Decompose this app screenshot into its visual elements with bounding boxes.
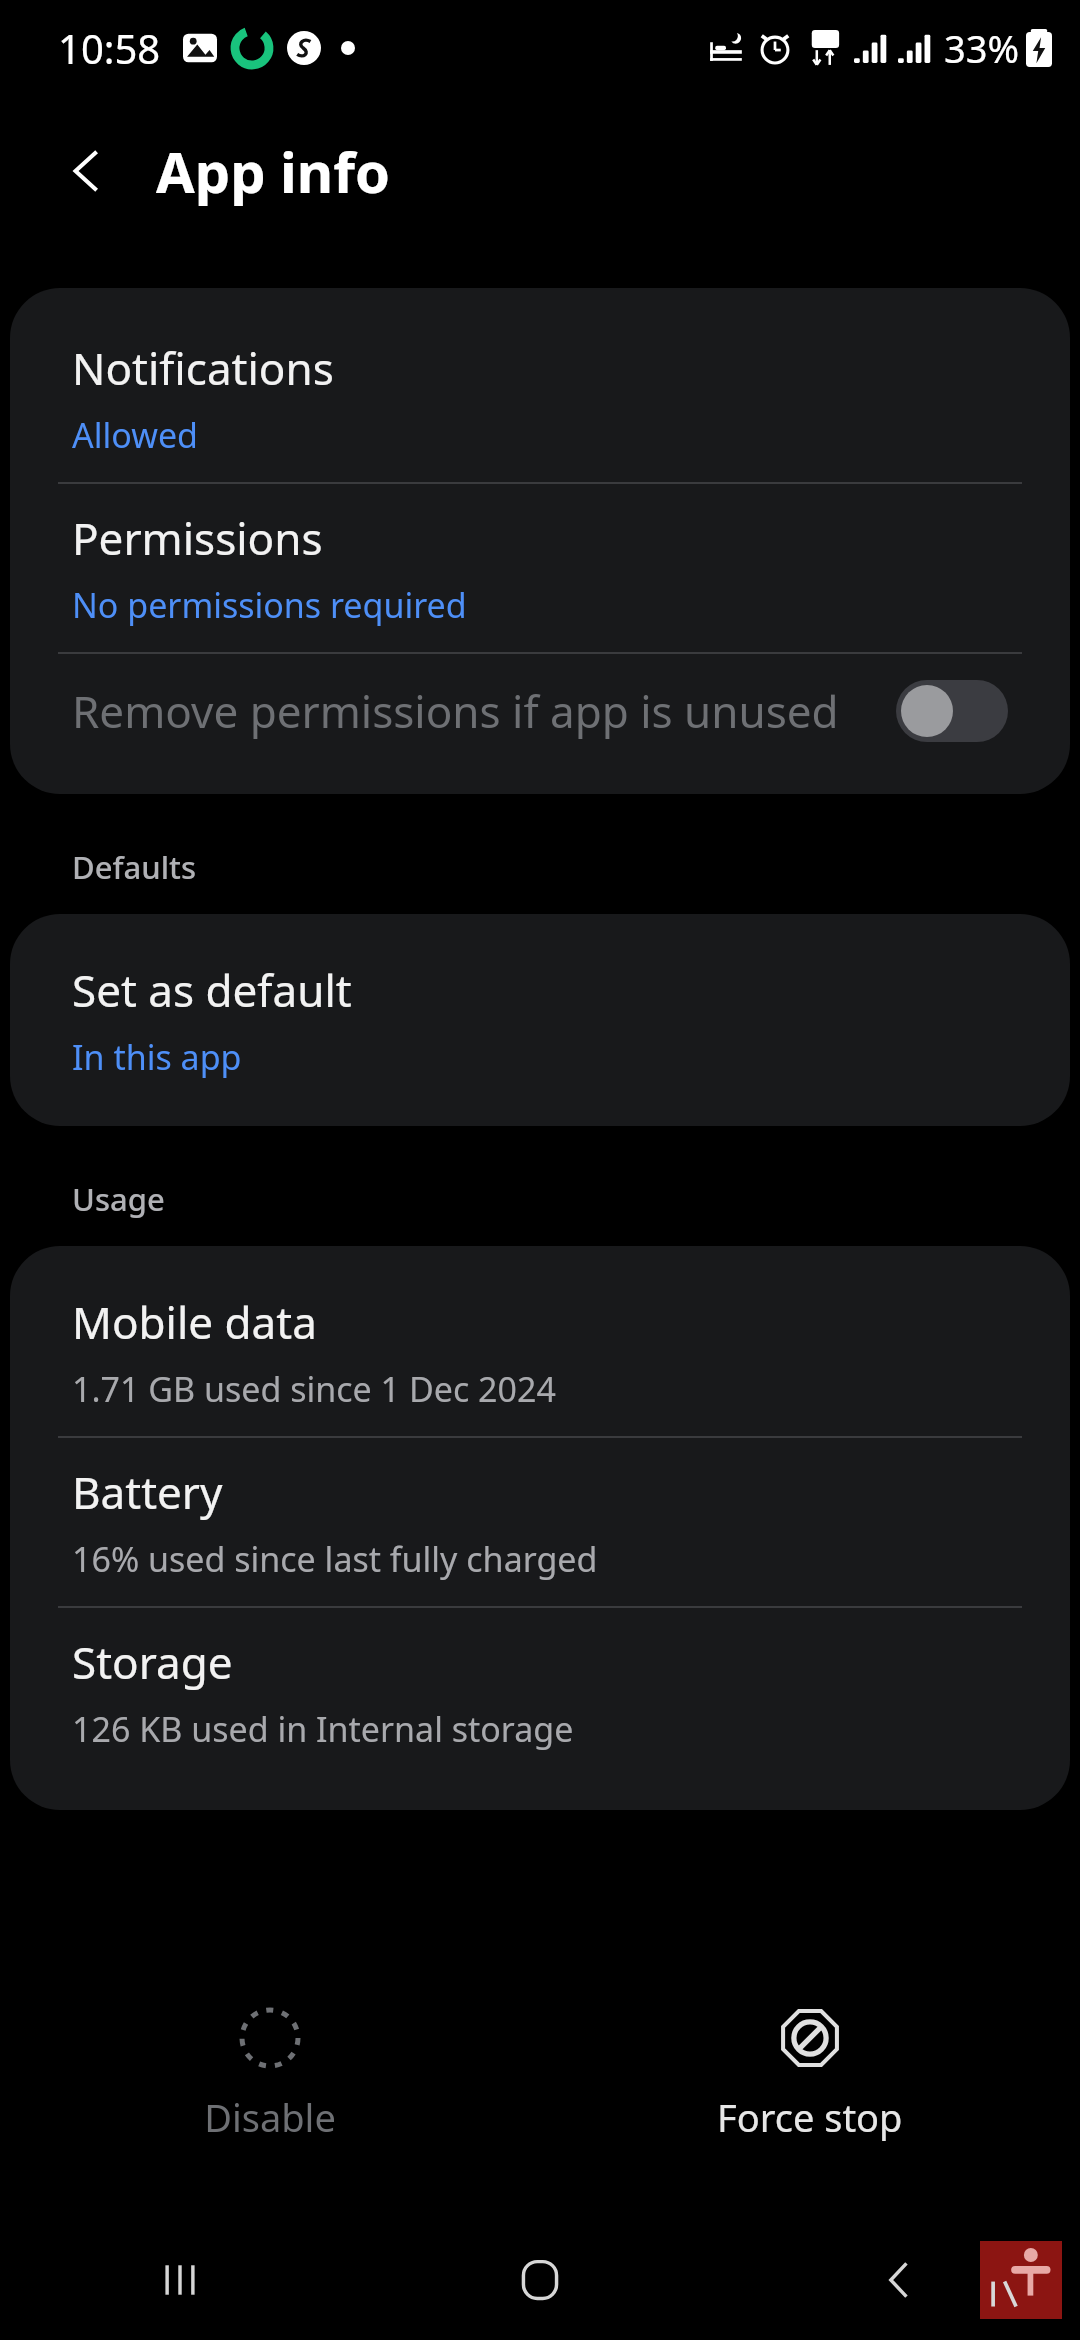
button[interactable]: Set as default xyxy=(10,936,1070,1104)
button[interactable]: Force stop xyxy=(540,1980,1080,2170)
button[interactable]: Storage xyxy=(10,1608,1070,1776)
button[interactable]: Battery xyxy=(10,1438,1070,1606)
staticText: Defaults xyxy=(72,846,196,888)
staticText: 1.71 GB used since 1 Dec 2024 xyxy=(72,1366,556,1412)
staticText: 16% used since last fully charged xyxy=(72,1536,598,1582)
button[interactable]: Recents xyxy=(0,2220,360,2340)
button[interactable]: Remove permissions toggle xyxy=(896,680,1008,742)
staticText: Notifications xyxy=(72,338,334,398)
button[interactable]: Notifications xyxy=(10,314,1070,482)
staticText: 10:58 xyxy=(58,21,161,75)
staticText: In this app xyxy=(72,1034,242,1080)
staticText: Force stop xyxy=(717,2091,903,2143)
staticText: Permissions xyxy=(72,508,323,568)
staticText: Disable xyxy=(204,2091,336,2143)
button[interactable]: Home xyxy=(360,2220,720,2340)
staticText: Storage xyxy=(72,1632,233,1692)
button[interactable]: Mobile data xyxy=(10,1268,1070,1436)
staticText: 126 KB used in Internal storage xyxy=(72,1706,574,1752)
button[interactable]: Disable xyxy=(0,1980,540,2170)
button[interactable]: Accessibility shortcut xyxy=(980,2241,1062,2319)
staticText: Allowed xyxy=(72,412,198,458)
staticText: Remove permissions if app is unused xyxy=(72,681,846,741)
staticText: Mobile data xyxy=(72,1292,317,1352)
button[interactable]: Permissions xyxy=(10,484,1070,652)
staticText: Usage xyxy=(72,1178,165,1220)
staticText: No permissions required xyxy=(72,582,467,628)
staticText: App info xyxy=(156,133,390,209)
staticText: Battery xyxy=(72,1462,223,1522)
staticText: Set as default xyxy=(72,960,352,1020)
button[interactable]: Remove permissions if app is unused xyxy=(10,654,1070,768)
button[interactable]: Back xyxy=(720,2220,1080,2340)
button[interactable]: Back xyxy=(46,129,130,213)
staticText: 33% xyxy=(944,22,1020,74)
